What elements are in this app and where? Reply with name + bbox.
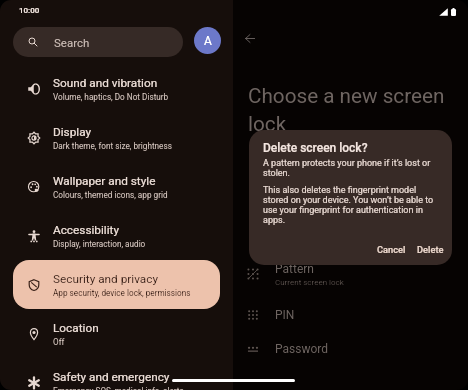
button[interactable]: Pattern (233, 259, 468, 289)
staticText: Display, interaction, audio (53, 239, 146, 249)
staticText: Current screen lock (275, 278, 344, 287)
button[interactable]: Security and privacy (13, 260, 220, 309)
staticText: A (204, 34, 212, 48)
staticText: Security and privacy (53, 272, 158, 286)
staticText: Delete (417, 244, 444, 255)
button[interactable]: Account (194, 27, 221, 54)
button[interactable]: Search (13, 27, 183, 57)
staticText: Delete screen lock? (263, 141, 368, 155)
staticText: Accessibility (53, 223, 120, 237)
staticText: This also deletes the fingerprint model … (263, 185, 438, 225)
staticText: 10:00 (19, 6, 40, 15)
staticText: Sound and vibration (53, 76, 158, 90)
button[interactable]: Delete (412, 242, 449, 257)
staticText: PIN (275, 308, 295, 322)
button[interactable]: Cancel (372, 242, 411, 257)
button[interactable]: Wallpaper and style (13, 162, 220, 211)
staticText: Emergency SOS, medical info, alerts (53, 386, 184, 390)
staticText: Display (53, 125, 92, 139)
staticText: Pattern (275, 262, 314, 276)
button[interactable]: Sound and vibration (13, 64, 220, 113)
button[interactable]: Display (13, 113, 220, 162)
staticText: Choose a new screen lock (248, 84, 448, 136)
button[interactable]: Password (233, 334, 468, 364)
staticText: App security, device lock, permissions (53, 288, 191, 298)
staticText: Off (53, 337, 65, 347)
staticText: Dark theme, font size, brightness (53, 141, 172, 151)
staticText: Search (54, 36, 90, 49)
staticText: A pattern protects your phone if it’s lo… (263, 158, 438, 178)
staticText: Safety and emergency (53, 370, 170, 384)
staticText: Location (53, 321, 99, 335)
staticText: Cancel (377, 244, 406, 255)
staticText: Wallpaper and style (53, 174, 156, 188)
button[interactable]: PIN (233, 300, 468, 330)
button[interactable]: Safety and emergency (13, 358, 220, 390)
button[interactable]: Accessibility (13, 211, 220, 260)
staticText: Volume, haptics, Do Not Disturb (53, 92, 169, 102)
staticText: Password (275, 342, 329, 356)
staticText: Colours, themed icons, app grid (53, 190, 168, 200)
button[interactable]: Back (235, 23, 265, 53)
button[interactable]: Location (13, 309, 220, 358)
